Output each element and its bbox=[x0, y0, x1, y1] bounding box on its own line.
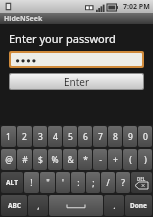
staticText: 1 bbox=[6, 131, 11, 143]
button[interactable]: ' bbox=[56, 172, 70, 193]
button[interactable]: Enter bbox=[10, 74, 143, 89]
button[interactable]: . bbox=[104, 195, 124, 216]
staticText: 3 bbox=[38, 131, 43, 143]
button[interactable]: / bbox=[101, 172, 115, 193]
button[interactable]: 2 bbox=[17, 126, 32, 147]
staticText: & bbox=[67, 154, 74, 166]
staticText: HideNSeek bbox=[4, 14, 43, 24]
button[interactable]: , bbox=[28, 195, 48, 216]
button[interactable]: ! bbox=[24, 172, 39, 193]
staticText: ( bbox=[129, 154, 132, 166]
button[interactable]: - bbox=[93, 149, 107, 170]
staticText: ; bbox=[92, 177, 95, 189]
button[interactable]: ( bbox=[123, 149, 137, 170]
button[interactable]: 9 bbox=[123, 126, 137, 147]
staticText: ' bbox=[62, 177, 64, 189]
staticText: ABC bbox=[8, 201, 21, 210]
staticText: " bbox=[46, 177, 50, 189]
button[interactable]: ; bbox=[86, 172, 100, 193]
staticText: Enter your password bbox=[9, 31, 116, 46]
button[interactable]: ABC bbox=[1, 195, 27, 216]
staticText: . bbox=[113, 200, 116, 212]
button[interactable]: 8 bbox=[108, 126, 122, 147]
button[interactable]: : bbox=[71, 172, 85, 193]
staticText: + bbox=[113, 154, 118, 166]
staticText: Enter bbox=[64, 75, 90, 89]
staticText: @ bbox=[5, 154, 13, 166]
button[interactable]: 6 bbox=[78, 126, 92, 147]
staticText: ? bbox=[121, 177, 125, 189]
staticText: # bbox=[22, 154, 28, 166]
button[interactable]: 3 bbox=[33, 126, 47, 147]
staticText: - bbox=[99, 154, 102, 166]
button[interactable]: % bbox=[48, 149, 62, 170]
button[interactable]: ? bbox=[116, 172, 130, 193]
button[interactable]: 5 bbox=[63, 126, 77, 147]
staticText: 0 bbox=[143, 131, 148, 143]
button[interactable]: 4 bbox=[48, 126, 62, 147]
button[interactable]: 0 bbox=[138, 126, 152, 147]
button[interactable]: + bbox=[108, 149, 122, 170]
staticText: 8 bbox=[113, 131, 118, 143]
button[interactable] bbox=[11, 53, 142, 66]
staticText: 7 bbox=[98, 131, 103, 143]
staticText: 5 bbox=[68, 131, 73, 143]
staticText: % bbox=[51, 154, 59, 166]
staticText: * bbox=[83, 154, 88, 166]
button[interactable]: Space bbox=[49, 195, 103, 216]
button[interactable]: 1 bbox=[1, 126, 16, 147]
staticText: / bbox=[106, 177, 110, 189]
button[interactable]: 7 bbox=[93, 126, 107, 147]
button[interactable]: & bbox=[63, 149, 77, 170]
staticText: , bbox=[37, 200, 40, 212]
button[interactable]: @ bbox=[1, 149, 16, 170]
staticText: 7:02 PM bbox=[123, 2, 150, 12]
staticText: DEL bbox=[137, 176, 146, 182]
staticText: 6 bbox=[83, 131, 88, 143]
button[interactable]: ) bbox=[138, 149, 152, 170]
staticText: ) bbox=[144, 154, 147, 166]
staticText: ! bbox=[30, 177, 33, 189]
button[interactable]: # bbox=[17, 149, 32, 170]
staticText: 2 bbox=[22, 131, 27, 143]
button[interactable]: $ bbox=[33, 149, 47, 170]
staticText: Done bbox=[130, 201, 147, 210]
button[interactable]: Delete bbox=[131, 172, 152, 193]
staticText: $ bbox=[38, 154, 43, 166]
button[interactable]: ALT bbox=[1, 172, 23, 193]
staticText: 4 bbox=[53, 131, 58, 143]
staticText: 9 bbox=[128, 131, 133, 143]
staticText: : bbox=[77, 177, 80, 189]
button[interactable]: " bbox=[40, 172, 55, 193]
staticText: ALT bbox=[6, 178, 18, 187]
button[interactable]: Done bbox=[125, 195, 152, 216]
button[interactable]: * bbox=[78, 149, 92, 170]
